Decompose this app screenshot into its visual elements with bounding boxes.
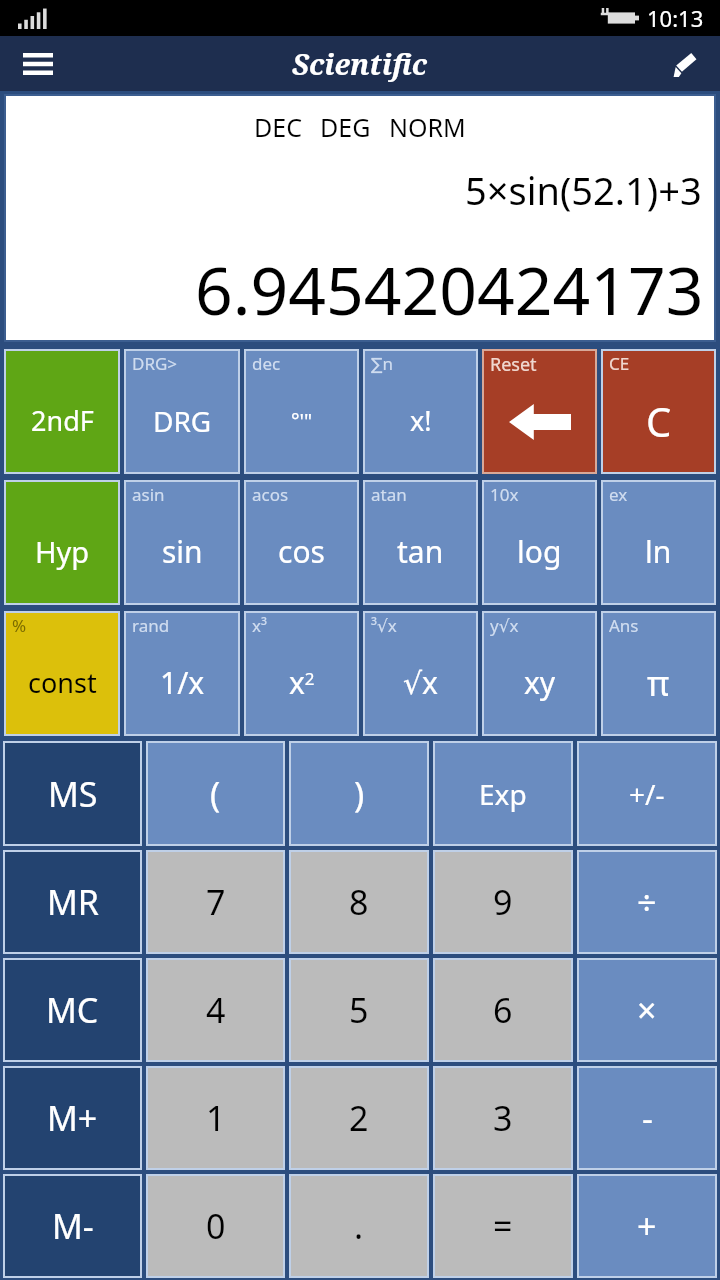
button[interactable]: rand [124, 611, 240, 736]
staticText: ln [645, 531, 672, 572]
staticText: ∑n [371, 352, 393, 375]
button[interactable]: asin [124, 480, 240, 605]
staticText: DRG [153, 402, 212, 440]
staticText: Ans [609, 614, 639, 637]
button[interactable]: +/- [577, 741, 717, 846]
staticText: acos [252, 483, 289, 506]
button[interactable]: MC [3, 958, 142, 1062]
button[interactable]: ex [601, 480, 716, 605]
staticText: ex [609, 483, 628, 506]
staticText: CE [609, 352, 630, 375]
button[interactable]: 2ndF [4, 349, 120, 474]
button[interactable]: ÷ [577, 850, 717, 954]
button[interactable]: Highlighter [660, 40, 708, 88]
staticText: NORM [389, 110, 466, 144]
staticText: MS [48, 771, 98, 817]
staticText: x³ [252, 614, 267, 637]
staticText: 4 [206, 987, 226, 1033]
staticText: × [637, 987, 657, 1033]
staticText: 2 [349, 1095, 369, 1141]
staticText: ³√x [371, 614, 397, 637]
button[interactable]: M- [3, 1174, 142, 1278]
button[interactable]: ³√x [363, 611, 478, 736]
staticText: 10:13 [647, 3, 704, 33]
staticText: + [637, 1203, 657, 1249]
button[interactable]: 3 [433, 1066, 573, 1170]
button[interactable]: ) [289, 741, 429, 846]
staticText: x2 [289, 662, 315, 703]
button[interactable]: 7 [146, 850, 285, 954]
staticText: sin [162, 531, 203, 572]
staticText: MC [46, 987, 99, 1033]
staticText: DEC [254, 110, 302, 144]
button[interactable]: + [577, 1174, 717, 1278]
staticText: 6.945420424173 [195, 244, 704, 334]
button[interactable]: MR [3, 850, 142, 954]
button[interactable]: DEC [6, 96, 714, 340]
staticText: 5×sin(52.1)+3 [465, 164, 702, 216]
button[interactable]: MS [3, 741, 142, 846]
staticText: 7 [206, 879, 226, 925]
staticText: x! [410, 402, 432, 439]
button[interactable]: Menu [14, 40, 62, 88]
staticText: . [354, 1203, 364, 1249]
button[interactable]: Reset [482, 349, 597, 474]
button[interactable]: M+ [3, 1066, 142, 1170]
button[interactable]: atan [363, 480, 478, 605]
button[interactable]: CE [601, 349, 716, 474]
staticText: +/- [629, 775, 665, 813]
button[interactable]: 0 [146, 1174, 285, 1278]
button[interactable]: acos [244, 480, 359, 605]
button[interactable]: × [577, 958, 717, 1062]
staticText: Reset [490, 352, 537, 377]
button[interactable]: = [433, 1174, 573, 1278]
button[interactable]: 4 [146, 958, 285, 1062]
button[interactable]: 6 [433, 958, 573, 1062]
button[interactable]: DRG> [124, 349, 240, 474]
staticText: C [646, 394, 672, 448]
button[interactable]: 5 [289, 958, 429, 1062]
staticText: atan [371, 483, 407, 506]
button[interactable]: Hyp [4, 480, 120, 605]
staticText: MR [47, 879, 99, 925]
staticText: DRG> [132, 352, 178, 375]
staticText: √x [403, 662, 438, 703]
button[interactable]: 9 [433, 850, 573, 954]
staticText: % [12, 614, 27, 637]
staticText: asin [132, 483, 165, 506]
button[interactable]: ( [146, 741, 285, 846]
staticText: ) [354, 771, 365, 817]
staticText: M+ [47, 1095, 98, 1141]
staticText: - [642, 1095, 653, 1141]
button[interactable]: 2 [289, 1066, 429, 1170]
button[interactable]: - [577, 1066, 717, 1170]
button[interactable]: ∑n [363, 349, 478, 474]
staticText: 6 [493, 987, 513, 1033]
staticText: π [647, 660, 670, 706]
staticText: 0 [206, 1203, 226, 1249]
button[interactable]: x³ [244, 611, 359, 736]
button[interactable]: y√x [482, 611, 597, 736]
staticText: tan [397, 531, 444, 572]
button[interactable]: 1 [146, 1066, 285, 1170]
button[interactable]: % [4, 611, 120, 736]
staticText: ÷ [637, 879, 657, 925]
staticText: °'" [291, 407, 313, 434]
staticText: 2ndF [31, 402, 94, 439]
button[interactable]: 10x [482, 480, 597, 605]
staticText: 8 [349, 879, 369, 925]
button[interactable]: . [289, 1174, 429, 1278]
button[interactable]: 8 [289, 850, 429, 954]
staticText: M- [52, 1203, 94, 1249]
staticText: rand [132, 614, 170, 637]
staticText: DEG [320, 110, 371, 144]
button[interactable]: Exp [433, 741, 573, 846]
staticText: 1 [206, 1095, 226, 1141]
button[interactable]: dec [244, 349, 359, 474]
staticText: cos [278, 531, 325, 572]
staticText: 9 [493, 879, 513, 925]
staticText: 5 [349, 987, 369, 1033]
button[interactable]: Ans [601, 611, 716, 736]
staticText: y√x [490, 614, 519, 637]
staticText: log [517, 531, 562, 572]
